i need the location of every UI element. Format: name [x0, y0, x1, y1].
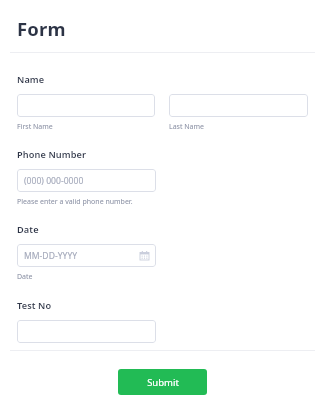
staticText: First Name — [17, 122, 53, 132]
button[interactable] — [17, 320, 156, 343]
staticText: Last Name — [169, 122, 205, 132]
staticText: Please enter a valid phone number. — [17, 197, 133, 207]
staticText: Form — [17, 16, 66, 41]
staticText: Name — [17, 73, 45, 86]
staticText: Date — [17, 272, 33, 282]
staticText: Date — [17, 223, 39, 236]
staticText: Phone Number — [17, 148, 87, 161]
other: Pick date — [140, 251, 149, 260]
button[interactable] — [169, 94, 308, 117]
staticText: Submit — [147, 376, 179, 389]
staticText: (000) 000-0000 — [24, 175, 84, 187]
staticText: MM-DD-YYYY — [24, 250, 78, 262]
button[interactable] — [17, 94, 155, 117]
staticText: Test No — [17, 299, 52, 312]
button[interactable]: Submit — [118, 369, 207, 395]
button[interactable]: MM-DD-YYYY — [17, 244, 156, 267]
button[interactable]: (000) 000-0000 — [17, 169, 156, 192]
